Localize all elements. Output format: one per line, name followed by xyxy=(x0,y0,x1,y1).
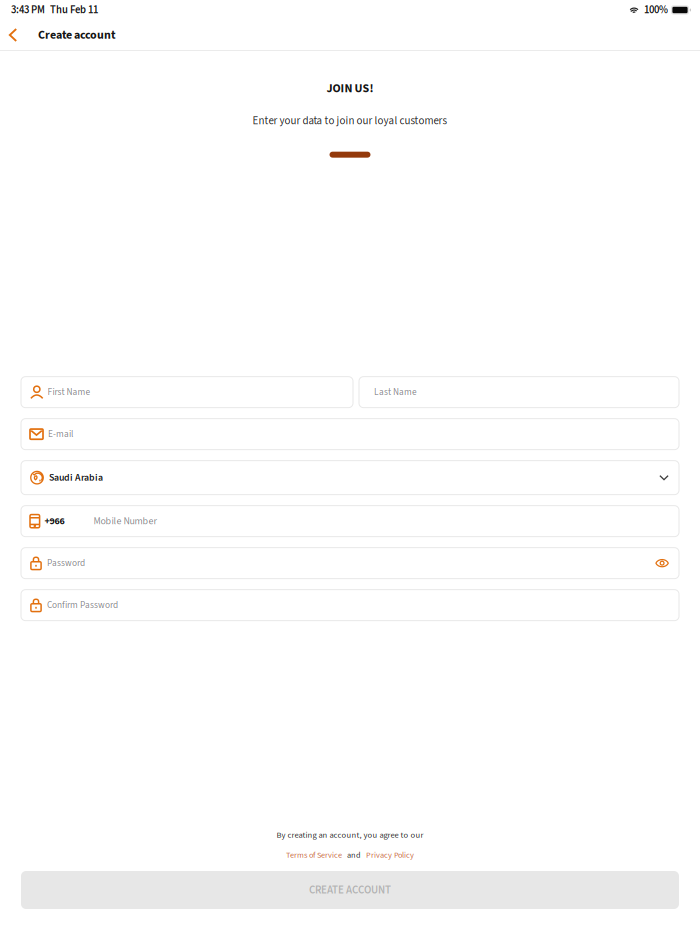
staticText: JOIN US! xyxy=(326,80,373,97)
staticText: CREATE ACCOUNT xyxy=(309,882,391,898)
staticText: Create account xyxy=(38,26,116,44)
staticText: By creating an account, you agree to our xyxy=(276,829,423,841)
staticText: 100% xyxy=(644,2,668,18)
staticText: Saudi Arabia xyxy=(49,471,103,485)
staticText: First Name xyxy=(48,385,91,399)
button[interactable]: CREATE ACCOUNT xyxy=(21,871,679,909)
staticText: Privacy Policy xyxy=(366,849,414,861)
staticText: Enter your data to join our loyal custom… xyxy=(252,113,447,129)
button[interactable]: Saudi Arabia xyxy=(21,461,679,495)
staticText: Mobile Number xyxy=(94,514,157,528)
staticText: Confirm Password xyxy=(47,598,118,612)
staticText: and xyxy=(347,849,361,861)
staticText: Last Name xyxy=(374,385,417,399)
staticText: Thu Feb 11 xyxy=(50,2,98,18)
staticText: Terms of Service xyxy=(286,849,342,861)
button[interactable]: Privacy Policy xyxy=(366,849,414,861)
button[interactable]: Terms of Service xyxy=(286,849,342,861)
staticText: 3:43 PM xyxy=(11,2,45,18)
staticText: Password xyxy=(47,556,85,570)
staticText: +966 xyxy=(45,514,65,528)
button[interactable]: Show password xyxy=(655,558,669,568)
button[interactable]: Back xyxy=(2,20,24,50)
staticText: E-mail xyxy=(48,427,73,441)
